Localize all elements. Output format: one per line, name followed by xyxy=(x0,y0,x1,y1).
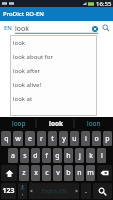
staticText: k xyxy=(89,151,93,161)
staticText: look after xyxy=(13,67,41,75)
button[interactable]: r xyxy=(37,131,46,146)
staticText: look alive! xyxy=(13,81,42,89)
button[interactable]: z xyxy=(19,165,29,181)
button[interactable]: c xyxy=(42,165,51,181)
button[interactable]: . xyxy=(81,183,91,199)
staticText: z xyxy=(22,168,26,178)
button[interactable]: look alive! xyxy=(10,78,97,92)
button[interactable]: j xyxy=(75,148,84,163)
staticText: g xyxy=(55,151,60,161)
staticText: look xyxy=(49,119,64,128)
button[interactable]: a xyxy=(8,148,18,163)
button[interactable]: v xyxy=(53,165,62,181)
button[interactable]: e xyxy=(25,131,35,146)
staticText: English (US) xyxy=(42,188,67,194)
staticText: look xyxy=(13,39,26,47)
staticText: c xyxy=(45,168,49,178)
button[interactable]: p xyxy=(103,131,112,146)
staticText: l xyxy=(101,151,103,161)
button[interactable]: o xyxy=(92,131,101,146)
button[interactable]: l xyxy=(97,148,106,163)
staticText: d xyxy=(33,151,38,161)
button[interactable]: look xyxy=(37,117,75,130)
staticText: loon xyxy=(87,119,101,128)
button[interactable]: s xyxy=(20,148,29,163)
button[interactable]: h xyxy=(64,148,73,163)
staticText: , xyxy=(22,190,24,197)
staticText: look about for xyxy=(13,53,53,61)
button[interactable]: Search xyxy=(100,22,112,34)
staticText: 123 xyxy=(2,186,15,196)
button[interactable]: i xyxy=(81,131,90,146)
button[interactable]: n xyxy=(75,165,84,181)
staticText: m xyxy=(87,168,94,178)
button[interactable]: loon xyxy=(75,117,113,130)
button[interactable]: look about for xyxy=(10,50,97,64)
staticText: j xyxy=(79,151,81,161)
staticText: y xyxy=(62,134,66,144)
staticText: b xyxy=(66,168,71,178)
staticText: n xyxy=(77,168,82,178)
staticText: look at xyxy=(13,95,33,103)
staticText: f xyxy=(45,151,48,161)
button[interactable]: Shift xyxy=(1,165,17,181)
button[interactable]: look xyxy=(10,36,97,50)
button[interactable]: y xyxy=(59,131,68,146)
button[interactable]: Search xyxy=(93,183,112,199)
staticText: EN xyxy=(4,24,12,32)
staticText: s xyxy=(23,151,27,161)
button[interactable]: q xyxy=(1,131,11,146)
button[interactable]: u xyxy=(70,131,79,146)
staticText: e xyxy=(28,134,32,144)
button[interactable]: Clear xyxy=(89,23,100,34)
staticText: ProDict RO-EN xyxy=(3,10,44,18)
button[interactable]: k xyxy=(86,148,95,163)
button[interactable]: w xyxy=(13,131,23,146)
staticText: p xyxy=(105,134,110,144)
button[interactable]: look after xyxy=(10,64,97,78)
button[interactable]: t xyxy=(48,131,57,146)
staticText: o xyxy=(94,134,99,144)
button[interactable]: , xyxy=(18,183,27,199)
staticText: u xyxy=(72,134,77,144)
button[interactable]: look at xyxy=(10,92,97,106)
staticText: look xyxy=(15,24,30,34)
button[interactable]: m xyxy=(86,165,95,181)
button[interactable]: ProDict RO-EN xyxy=(0,7,113,21)
staticText: a xyxy=(11,151,15,161)
button[interactable]: f xyxy=(42,148,51,163)
button[interactable]: loop xyxy=(0,117,37,130)
button[interactable]: 123 xyxy=(1,183,16,199)
staticText: i xyxy=(85,134,87,144)
staticText: r xyxy=(40,134,43,144)
button[interactable]: g xyxy=(53,148,62,163)
staticText: h xyxy=(66,151,71,161)
staticText: v xyxy=(56,168,60,178)
staticText: x xyxy=(34,168,38,178)
button[interactable]: b xyxy=(64,165,73,181)
staticText: loop xyxy=(12,119,26,128)
staticText: t xyxy=(51,134,54,144)
button[interactable]: d xyxy=(31,148,40,163)
staticText: . xyxy=(85,186,87,196)
staticText: w xyxy=(15,134,21,144)
button[interactable]: space xyxy=(29,183,79,199)
staticText: 16:55 xyxy=(96,0,112,7)
button[interactable]: Backspace xyxy=(97,165,112,181)
staticText: q xyxy=(4,134,9,144)
button[interactable]: x xyxy=(31,165,40,181)
